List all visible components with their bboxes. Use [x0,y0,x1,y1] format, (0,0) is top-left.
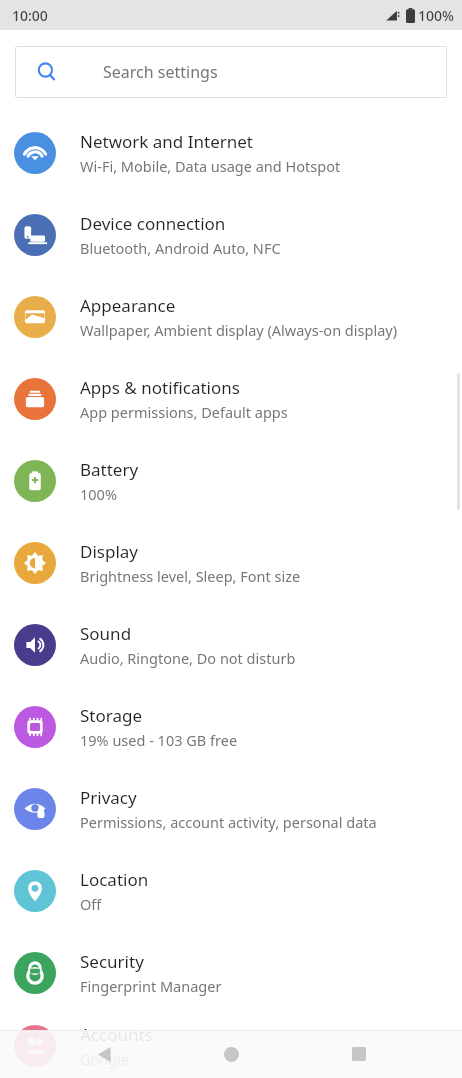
button[interactable]: Network and Internet [0,112,462,194]
staticText: 100% [418,6,454,25]
button[interactable]: Storage [0,686,462,768]
button[interactable]: Appearance [0,276,462,358]
button[interactable]: Security [0,932,462,1014]
button[interactable]: Recent apps [335,1030,383,1078]
staticText: Storage [80,704,143,727]
button[interactable]: Device connection [0,194,462,276]
staticText: Google [80,1049,129,1069]
button[interactable]: Location [0,850,462,932]
staticText: Apps & notifications [80,376,240,399]
staticText: Location [80,868,149,891]
staticText: Brightness level, Sleep, Font size [80,566,301,586]
staticText: Security [80,950,144,973]
staticText: 100% [80,484,117,504]
staticText: Search settings [103,61,218,83]
staticText: Sound [80,622,132,645]
button[interactable]: Home [207,1030,255,1078]
button[interactable]: Apps & notifications [0,358,462,440]
staticText: Wallpaper, Ambient display (Always-on di… [80,320,398,340]
button[interactable]: Search settings [15,46,447,98]
staticText: Wi-Fi, Mobile, Data usage and Hotspot [80,156,341,176]
button[interactable]: Sound [0,604,462,686]
button[interactable]: Display [0,522,462,604]
staticText: Permissions, account activity, personal … [80,812,377,832]
staticText: App permissions, Default apps [80,402,288,422]
staticText: Bluetooth, Android Auto, NFC [80,238,281,258]
staticText: Appearance [80,294,176,317]
button[interactable]: Accounts [0,1014,462,1078]
staticText: Fingerprint Manager [80,976,222,996]
button[interactable]: Battery [0,440,462,522]
button[interactable]: Back [80,1030,128,1078]
staticText: Device connection [80,212,226,235]
staticText: Network and Internet [80,130,253,153]
staticText: Battery [80,458,139,481]
staticText: Privacy [80,786,137,809]
staticText: 10:00 [12,6,48,25]
staticText: Audio, Ringtone, Do not disturb [80,648,296,668]
staticText: Off [80,894,102,914]
button[interactable]: Privacy [0,768,462,850]
staticText: Accounts [80,1023,153,1046]
staticText: Display [80,540,138,563]
staticText: 19% used - 103 GB free [80,730,238,750]
